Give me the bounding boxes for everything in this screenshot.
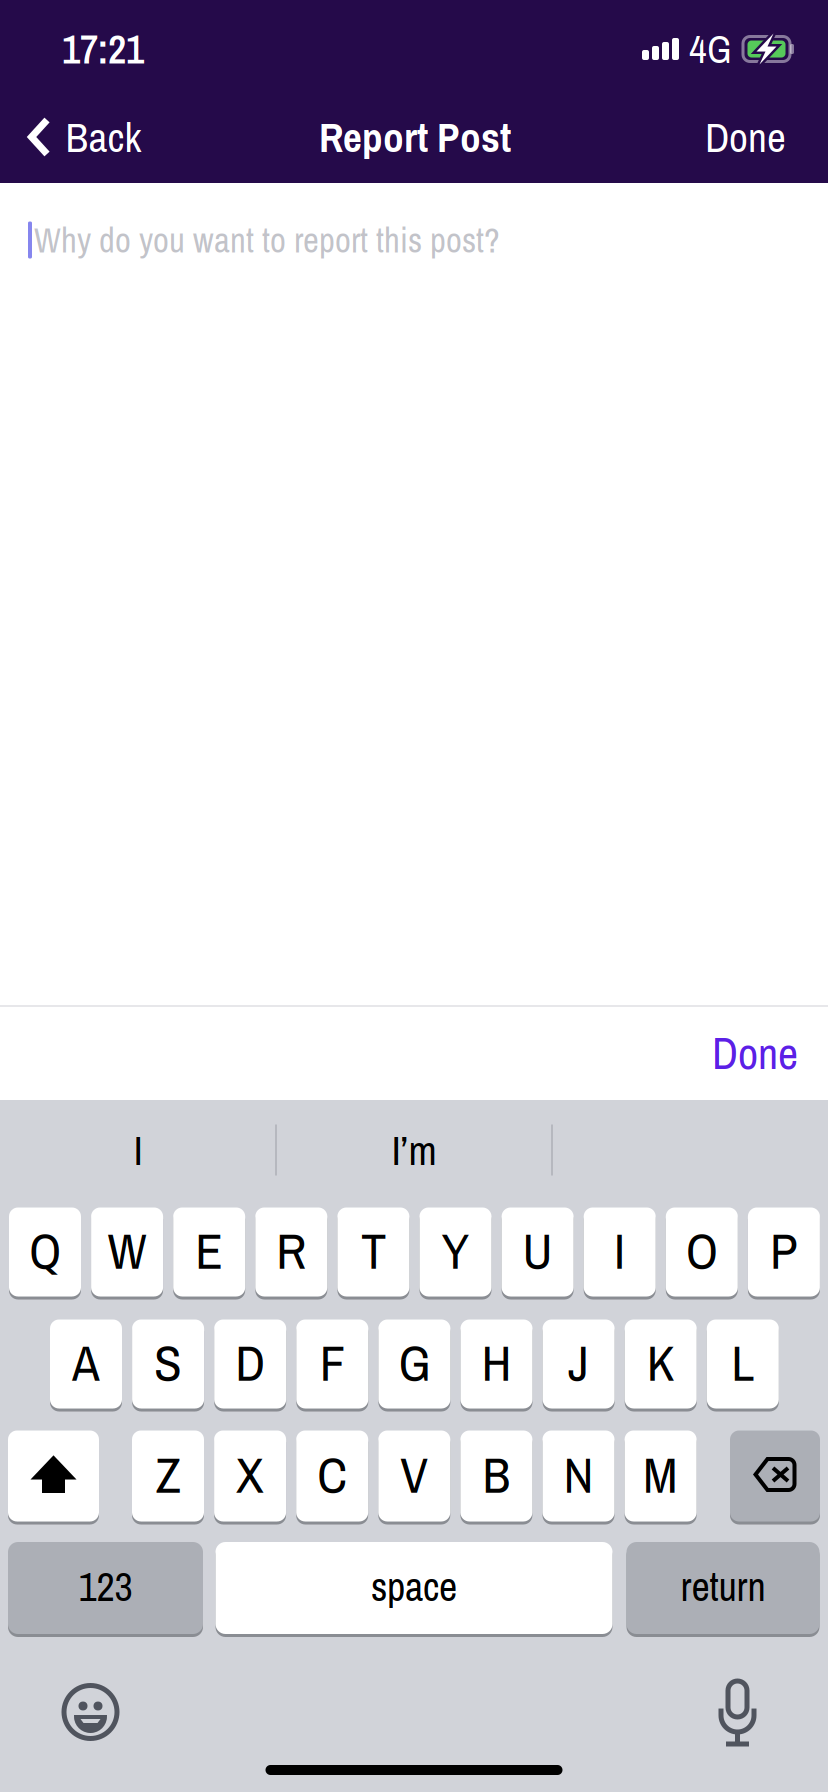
staticText: H bbox=[481, 1328, 511, 1397]
staticText: W bbox=[108, 1216, 147, 1285]
button[interactable]: 123 bbox=[8, 1540, 203, 1635]
staticText: E bbox=[195, 1216, 223, 1285]
button[interactable]: return bbox=[626, 1540, 819, 1635]
staticText: I bbox=[133, 1122, 142, 1178]
staticText: C bbox=[317, 1440, 347, 1509]
staticText: I’m bbox=[391, 1122, 436, 1178]
button[interactable]: L bbox=[707, 1318, 779, 1410]
staticText: N bbox=[563, 1440, 593, 1509]
staticText: U bbox=[523, 1216, 553, 1285]
staticText: Why do you want to report this post? bbox=[34, 217, 500, 263]
staticText: Report Post bbox=[319, 109, 511, 165]
button[interactable]: I bbox=[0, 1112, 275, 1188]
button[interactable]: G bbox=[378, 1318, 450, 1410]
button[interactable]: U bbox=[502, 1206, 574, 1298]
staticText: M bbox=[643, 1440, 678, 1509]
staticText: Done bbox=[712, 1023, 798, 1083]
button[interactable]: F bbox=[296, 1318, 368, 1410]
button[interactable]: Emoji keyboard bbox=[62, 1684, 118, 1740]
button[interactable]: H bbox=[460, 1318, 532, 1410]
staticText: V bbox=[400, 1440, 428, 1509]
button[interactable]: Shift bbox=[8, 1429, 99, 1523]
staticText: R bbox=[276, 1216, 306, 1285]
button[interactable]: Y bbox=[419, 1206, 491, 1298]
staticText: return bbox=[680, 1560, 765, 1613]
button[interactable]: A bbox=[50, 1318, 122, 1410]
button[interactable]: Z bbox=[132, 1429, 204, 1523]
button[interactable]: X bbox=[214, 1429, 286, 1523]
button[interactable]: I’m bbox=[276, 1112, 551, 1188]
button[interactable]: S bbox=[132, 1318, 204, 1410]
staticText: O bbox=[686, 1216, 718, 1285]
button[interactable]: N bbox=[542, 1429, 614, 1523]
staticText: X bbox=[236, 1440, 264, 1509]
button[interactable]: Q bbox=[9, 1206, 81, 1298]
button[interactable]: B bbox=[460, 1429, 532, 1523]
staticText: S bbox=[154, 1328, 182, 1397]
button[interactable]: Done bbox=[648, 90, 828, 183]
button[interactable]: V bbox=[378, 1429, 450, 1523]
button[interactable]: Delete bbox=[730, 1429, 820, 1523]
staticText: Q bbox=[29, 1216, 61, 1285]
staticText: F bbox=[320, 1328, 345, 1397]
button[interactable]: M bbox=[625, 1429, 697, 1523]
staticText: 4G bbox=[689, 23, 732, 75]
staticText: 123 bbox=[78, 1560, 132, 1613]
button[interactable]: C bbox=[296, 1429, 368, 1523]
staticText: A bbox=[72, 1328, 100, 1397]
button[interactable]: I bbox=[584, 1206, 656, 1298]
button[interactable]: T bbox=[337, 1206, 409, 1298]
staticText: B bbox=[482, 1440, 510, 1509]
staticText: 17:21 bbox=[62, 22, 144, 76]
button[interactable]: Done bbox=[640, 1006, 828, 1099]
staticText: T bbox=[361, 1216, 386, 1285]
staticText: Done bbox=[705, 109, 786, 165]
button[interactable]: Back bbox=[0, 90, 200, 183]
button[interactable]: R bbox=[255, 1206, 327, 1298]
button[interactable]: J bbox=[543, 1318, 615, 1410]
button[interactable]: Dictation bbox=[709, 1686, 765, 1748]
button[interactable]: W bbox=[91, 1206, 163, 1298]
button[interactable]: space bbox=[215, 1540, 612, 1635]
staticText: P bbox=[770, 1216, 798, 1285]
staticText: J bbox=[568, 1328, 589, 1397]
staticText: Back bbox=[65, 109, 141, 165]
staticText: space bbox=[371, 1560, 457, 1613]
staticText: D bbox=[235, 1328, 265, 1397]
staticText: I bbox=[614, 1216, 626, 1285]
staticText: Z bbox=[155, 1440, 180, 1509]
staticText: K bbox=[647, 1328, 675, 1397]
button[interactable]: E bbox=[173, 1206, 245, 1298]
button[interactable]: K bbox=[625, 1318, 697, 1410]
staticText: G bbox=[398, 1328, 430, 1397]
staticText: Y bbox=[441, 1216, 469, 1285]
button[interactable]: O bbox=[666, 1206, 738, 1298]
button[interactable]: D bbox=[214, 1318, 286, 1410]
button[interactable]: P bbox=[748, 1206, 820, 1298]
staticText: L bbox=[731, 1328, 754, 1397]
